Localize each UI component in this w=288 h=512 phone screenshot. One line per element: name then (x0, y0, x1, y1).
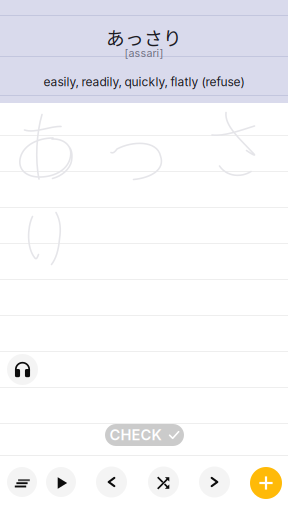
button[interactable]: CHECK (105, 424, 184, 446)
button[interactable]: Shuffle (148, 466, 179, 497)
button[interactable]: Play (46, 467, 76, 497)
button[interactable]: Options (7, 467, 37, 497)
button[interactable]: Previous (96, 466, 127, 497)
staticText: CHECK (109, 426, 161, 444)
staticText: [assari] (124, 46, 163, 59)
button[interactable]: Add (250, 467, 282, 499)
staticText: あっさり (106, 23, 182, 50)
button[interactable]: Play audio (7, 354, 38, 385)
button[interactable]: Next (199, 466, 230, 497)
staticText: easily, readily, quickly, flatly (refuse… (43, 75, 244, 89)
